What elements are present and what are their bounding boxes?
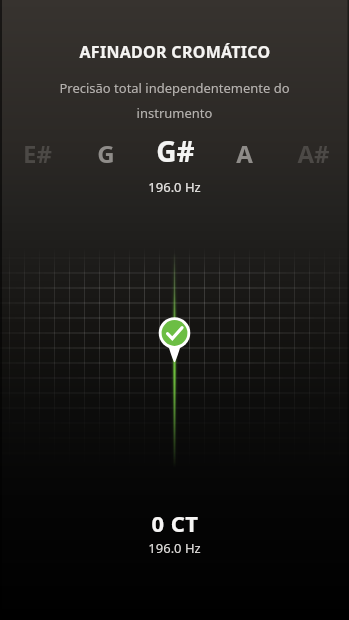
button[interactable]: E# bbox=[4, 133, 70, 173]
button[interactable]: G bbox=[73, 133, 139, 173]
staticText: G# bbox=[156, 132, 195, 170]
staticText: Precisão total independentemente do inst… bbox=[59, 79, 290, 121]
staticText: A bbox=[236, 137, 253, 170]
staticText: G bbox=[97, 137, 115, 170]
staticText: 196.0 Hz bbox=[148, 178, 201, 196]
staticText: AFINADOR CROMÁTICO bbox=[79, 41, 271, 63]
staticText: 196.0 Hz bbox=[148, 539, 201, 557]
staticText: 0 CT bbox=[151, 508, 199, 538]
staticText: E# bbox=[23, 137, 52, 170]
staticText: A# bbox=[297, 137, 330, 170]
button[interactable]: A bbox=[211, 133, 277, 173]
button[interactable]: A# bbox=[280, 133, 346, 173]
button[interactable]: G# bbox=[140, 131, 210, 171]
